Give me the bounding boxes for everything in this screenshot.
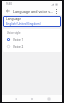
button[interactable]: Voice 2	[3, 43, 61, 50]
staticText: Voice style	[7, 31, 21, 35]
staticText: Language	[6, 17, 22, 21]
button[interactable]: Language	[3, 16, 61, 27]
button[interactable]: Back	[13, 96, 19, 102]
button[interactable]: Home	[29, 96, 35, 102]
staticText: 9:30	[6, 2, 12, 6]
staticText: Language and voice style	[13, 9, 53, 14]
button[interactable]: Back	[5, 8, 11, 14]
button[interactable]: Voice 1	[3, 36, 61, 43]
button[interactable]: Recent apps	[46, 96, 52, 102]
staticText: Voice 1	[13, 38, 57, 42]
button[interactable]: More options	[53, 8, 59, 14]
staticText: Voice 2	[13, 45, 57, 49]
staticText: English (United Kingdom)	[6, 22, 41, 26]
